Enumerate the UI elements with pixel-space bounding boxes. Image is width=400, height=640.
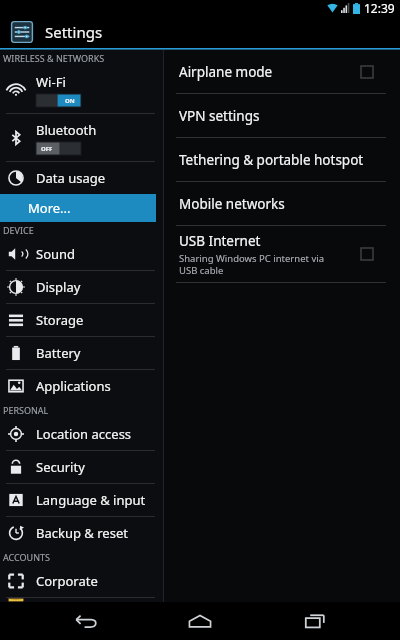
button[interactable]: USB Internet [164, 226, 400, 282]
staticText: Corporate [36, 572, 98, 590]
staticText: Sharing Windows PC internet via USB cabl… [179, 252, 325, 277]
staticText: Storage [36, 311, 84, 329]
button[interactable]: Bluetooth [0, 114, 163, 161]
staticText: Display [36, 278, 81, 296]
staticText: ON [65, 97, 75, 105]
button[interactable]: Corporate [0, 565, 163, 597]
staticText: Language & input [36, 491, 146, 509]
staticText: VPN settings [179, 107, 260, 125]
button[interactable]: More... [0, 194, 156, 222]
staticText: Sound [36, 245, 76, 263]
button[interactable]: Tethering & portable hotspot [164, 138, 400, 181]
button[interactable]: Switch on [36, 94, 81, 107]
staticText: ACCOUNTS [3, 551, 50, 563]
button[interactable]: Airplane mode checkbox [360, 65, 374, 79]
button[interactable]: Recent apps [285, 602, 345, 640]
button[interactable]: VPN settings [164, 94, 400, 137]
button[interactable]: Back [55, 602, 115, 640]
staticText: Data usage [36, 169, 106, 187]
staticText: Tethering & portable hotspot [179, 151, 364, 169]
button[interactable]: Wi-Fi [0, 66, 163, 113]
button[interactable]: Sound [0, 238, 163, 270]
button[interactable]: Location access [0, 418, 163, 450]
staticText: 12:39 [364, 0, 395, 16]
staticText: Bluetooth [36, 121, 97, 139]
button[interactable]: Display [0, 271, 163, 303]
staticText: Airplane mode [179, 63, 273, 81]
staticText: Wi-Fi [36, 73, 66, 91]
staticText: Location access [36, 425, 132, 443]
button[interactable]: Applications [0, 370, 163, 402]
button[interactable]: Security [0, 451, 163, 483]
button[interactable]: Switch off [36, 142, 81, 155]
button[interactable]: Battery [0, 337, 163, 369]
staticText: PERSONAL [3, 404, 49, 416]
staticText: OFF [41, 145, 53, 153]
button[interactable]: Data usage [0, 162, 163, 194]
button[interactable]: Mobile networks [164, 182, 400, 225]
staticText: Settings [45, 22, 103, 42]
button[interactable]: Storage [0, 304, 163, 336]
button[interactable]: Email [0, 598, 163, 602]
staticText: WIRELESS & NETWORKS [3, 52, 105, 64]
button[interactable]: USB Internet checkbox [360, 247, 374, 261]
staticText: Applications [36, 377, 111, 395]
button[interactable]: Home [170, 602, 230, 640]
button[interactable]: Backup & reset [0, 517, 163, 549]
staticText: Mobile networks [179, 195, 285, 213]
staticText: Security [36, 458, 85, 476]
staticText: Backup & reset [36, 524, 128, 542]
button[interactable]: Airplane mode [164, 50, 400, 93]
staticText: USB Internet [179, 232, 261, 250]
staticText: Battery [36, 344, 81, 362]
button[interactable]: Language & input [0, 484, 163, 516]
staticText: DEVICE [3, 224, 34, 236]
staticText: More... [28, 199, 71, 217]
